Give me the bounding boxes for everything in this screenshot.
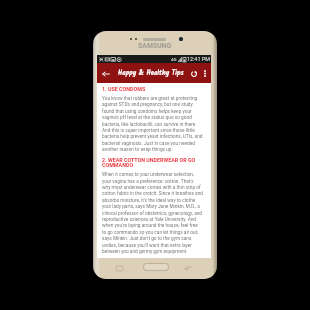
staticText: SAMSUNG [138, 42, 172, 50]
staticText: bacteria, like lactobacilli, can survive… [102, 121, 197, 127]
staticText: 12:41 PM [187, 56, 210, 62]
staticText: your lady parts, says Mary Jane Minkin, … [102, 204, 200, 210]
staticText: 4G [171, 57, 177, 62]
staticText: 1. USE CONDOMS [102, 86, 146, 92]
staticText: And this is super important since those … [102, 128, 195, 134]
staticText: clinical professor of obstetrics, gyneco… [102, 210, 203, 216]
button[interactable]: Refresh [188, 68, 199, 79]
staticText: You know that rubbers are great at prote… [102, 96, 198, 102]
button[interactable]: Home [143, 263, 169, 271]
button[interactable]: Back [183, 263, 193, 273]
staticText: against STDs and pregnancy, but one stud… [102, 102, 193, 108]
staticText: cotton fabric in the crotch. Since it br… [102, 191, 203, 197]
staticText: to go commando so you can let things air… [102, 230, 199, 236]
staticText: undies, because you'll want that extra l… [102, 242, 192, 248]
staticText: reproductive sciences at Yale University… [102, 217, 197, 223]
staticText: another reason to wrap things up. [102, 147, 173, 153]
button[interactable]: More options [200, 68, 210, 78]
staticText: bacterial vaginosis. Just in case you ne… [102, 141, 195, 147]
staticText: between you and germy gym equipment. [102, 249, 188, 255]
staticText: 2. WEAR COTTON UNDERWEAR OR GO [102, 157, 196, 163]
button[interactable]: Recents [114, 263, 124, 273]
staticText: Happy & Healthy Tips [118, 68, 184, 79]
staticText: bacteria help prevent yeast infections, … [102, 134, 203, 140]
staticText: your vagina has a preference: cotton. Th… [102, 178, 194, 184]
staticText: When it comes to your underwear selectio… [102, 172, 194, 178]
staticText: COMMANDO [102, 162, 134, 168]
staticText: why most underwear comes with a thin str… [102, 185, 201, 191]
staticText: absorbs moisture, it's the ideal way to … [102, 198, 196, 204]
staticText: says Minkin. Just don't go to the gym sa… [102, 236, 192, 242]
staticText: when you're laying around the house, fee… [102, 223, 198, 229]
button[interactable]: Navigate up [100, 68, 111, 79]
staticText: found that using condoms helps keep your [102, 109, 192, 115]
staticText: vagina's pH level at the status quo so g… [102, 115, 192, 121]
